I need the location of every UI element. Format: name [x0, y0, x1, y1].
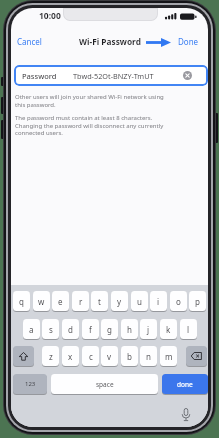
staticText: t: [98, 296, 101, 307]
button[interactable]: e: [52, 291, 69, 311]
button[interactable]: h: [121, 319, 138, 339]
staticText: Cancel: [17, 36, 42, 47]
staticText: x: [68, 351, 73, 362]
button[interactable]: s: [42, 319, 59, 339]
staticText: l: [187, 324, 190, 335]
button[interactable]: j: [140, 319, 157, 339]
staticText: Tbwd-52Ot-BNZY-TmUT: [73, 71, 154, 81]
staticText: Password: [22, 71, 57, 81]
staticText: i: [157, 296, 160, 307]
button[interactable]: v: [101, 346, 118, 366]
staticText: a: [29, 324, 34, 335]
staticText: z: [49, 351, 53, 362]
staticText: s: [49, 324, 53, 335]
button[interactable]: 123: [13, 374, 47, 394]
button[interactable]: b: [121, 346, 138, 366]
button[interactable]: y: [111, 291, 128, 311]
button[interactable]: Done: [178, 36, 199, 47]
button[interactable]: l: [180, 319, 197, 339]
staticText: Done: [178, 36, 199, 47]
staticText: c: [89, 351, 93, 362]
button[interactable]: Password: [14, 65, 208, 86]
button[interactable]: m: [160, 346, 177, 366]
button[interactable]: r: [72, 291, 89, 311]
button[interactable]: q: [13, 291, 30, 311]
button[interactable]: t: [91, 291, 108, 311]
staticText: p: [195, 296, 200, 307]
staticText: f: [89, 324, 92, 335]
staticText: v: [107, 351, 112, 362]
staticText: q: [19, 296, 24, 307]
staticText: h: [127, 324, 132, 335]
button[interactable]: d: [62, 319, 79, 339]
staticText: u: [137, 296, 142, 307]
staticText: y: [117, 296, 122, 307]
staticText: o: [176, 296, 181, 307]
button[interactable]: done: [162, 374, 208, 394]
staticText: r: [79, 296, 83, 307]
staticText: g: [107, 324, 112, 335]
button[interactable]: o: [170, 291, 187, 311]
button[interactable]: g: [101, 319, 118, 339]
button[interactable]: x: [62, 346, 79, 366]
staticText: b: [127, 351, 132, 362]
button[interactable]: [13, 346, 34, 366]
button[interactable]: p: [189, 291, 206, 311]
staticText: space: [96, 380, 114, 389]
button[interactable]: i: [150, 291, 167, 311]
staticText: m: [165, 351, 173, 362]
button[interactable]: f: [82, 319, 99, 339]
button[interactable]: c: [82, 346, 99, 366]
button[interactable]: k: [160, 319, 177, 339]
button[interactable]: [181, 408, 191, 422]
button[interactable]: u: [131, 291, 148, 311]
staticText: Wi-Fi Password: [79, 36, 141, 47]
staticText: done: [177, 380, 193, 389]
button[interactable]: space: [51, 374, 158, 394]
staticText: k: [166, 324, 171, 335]
staticText: j: [147, 324, 150, 335]
button[interactable]: a: [23, 319, 40, 339]
button[interactable]: z: [42, 346, 59, 366]
staticText: w: [38, 296, 45, 307]
button[interactable]: w: [33, 291, 50, 311]
staticText: Other users will join your shared Wi-Fi …: [15, 93, 164, 108]
button[interactable]: [183, 71, 192, 80]
staticText: The password must contain at least 8 cha…: [15, 114, 164, 136]
staticText: 123: [25, 380, 36, 388]
staticText: e: [58, 296, 63, 307]
staticText: n: [146, 351, 151, 362]
button[interactable]: [186, 346, 207, 366]
staticText: 10:00: [39, 10, 61, 22]
button[interactable]: n: [140, 346, 157, 366]
staticText: d: [68, 324, 73, 335]
button[interactable]: Cancel: [17, 36, 42, 47]
